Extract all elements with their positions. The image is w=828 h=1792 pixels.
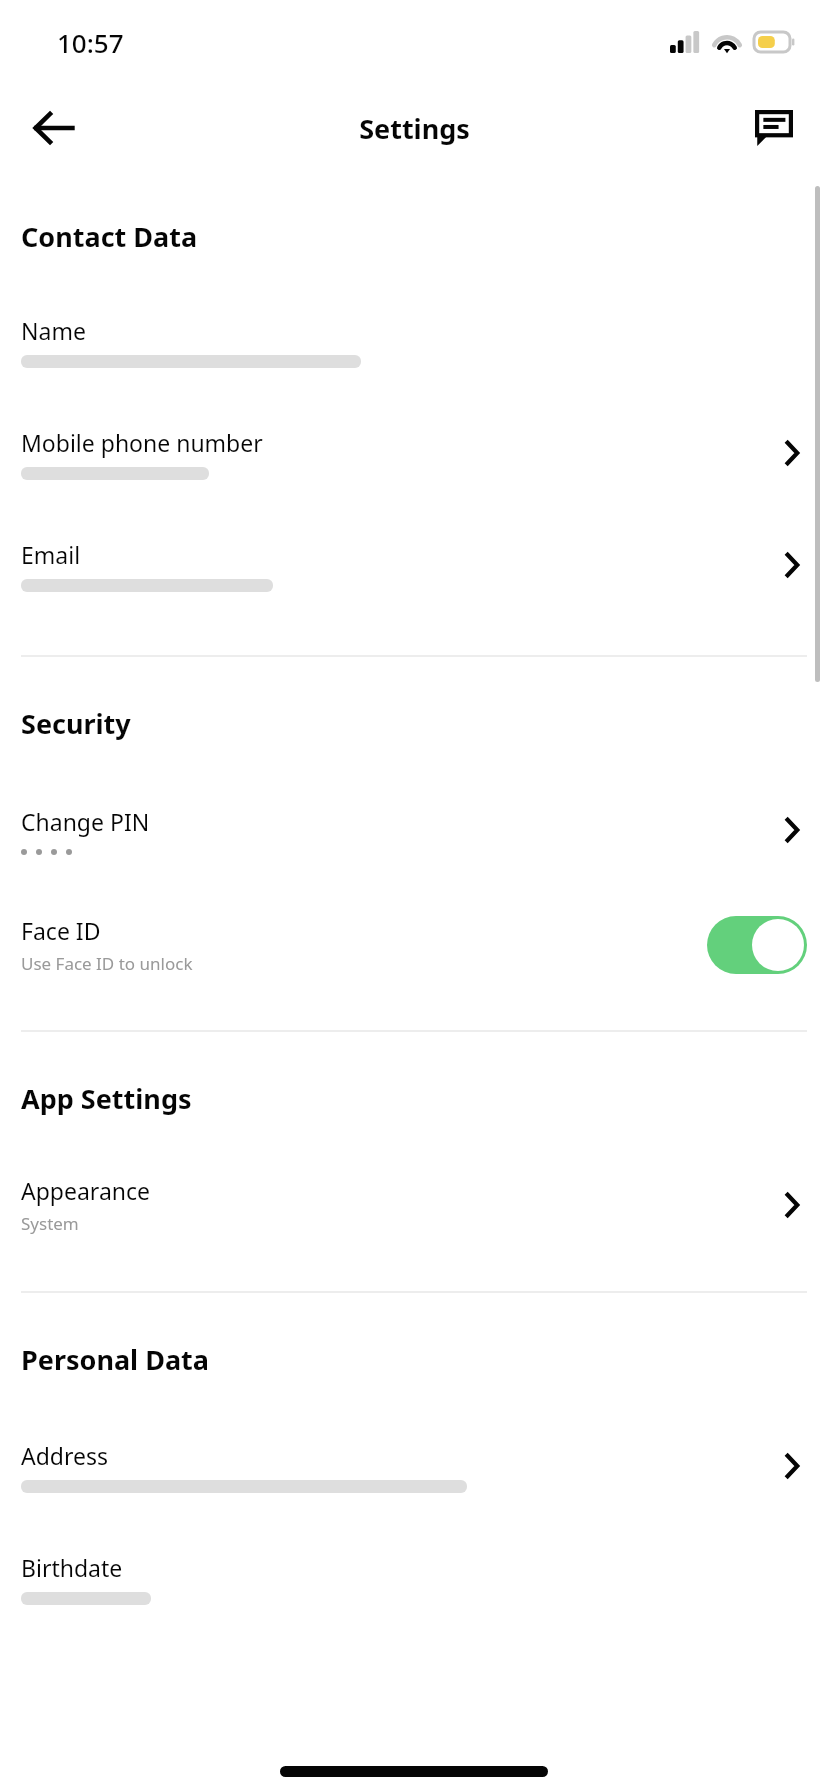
staticText: Use Face ID to unlock [21, 952, 193, 975]
staticText: Birthdate [21, 1552, 123, 1583]
button[interactable]: Face ID toggle [707, 916, 807, 974]
button[interactable]: Mobile phone number [0, 397, 828, 509]
staticText: Security [21, 705, 131, 742]
button[interactable]: Messages [746, 100, 802, 156]
staticText: Personal Data [21, 1341, 210, 1378]
staticText: System [21, 1212, 79, 1235]
staticText: Name [21, 315, 86, 346]
staticText: Address [21, 1440, 109, 1471]
staticText: Mobile phone number [21, 427, 263, 458]
button[interactable]: Email [0, 509, 828, 621]
staticText: Change PIN [21, 806, 150, 837]
button[interactable]: Address [0, 1410, 828, 1522]
staticText: Email [21, 539, 81, 570]
button[interactable]: Face ID [0, 886, 828, 1004]
staticText: Settings [359, 110, 470, 147]
button[interactable]: Change PIN [0, 774, 828, 886]
staticText: Face ID [21, 915, 101, 946]
staticText: App Settings [21, 1080, 192, 1117]
button[interactable]: Birthdate [0, 1522, 828, 1634]
button[interactable]: Back [26, 100, 82, 156]
staticText: 10:57 [57, 25, 124, 60]
staticText: Appearance [21, 1175, 151, 1206]
staticText: Contact Data [21, 218, 198, 255]
button[interactable]: Appearance [0, 1149, 828, 1261]
button[interactable]: Name [0, 285, 828, 397]
